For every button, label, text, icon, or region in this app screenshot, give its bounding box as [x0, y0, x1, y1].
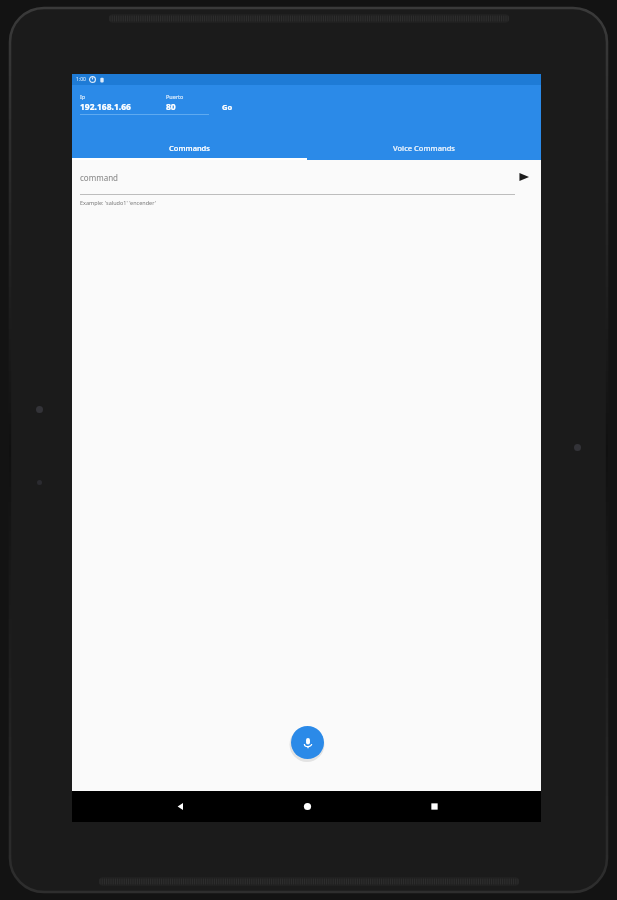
button[interactable]: Puerto — [166, 93, 214, 113]
button[interactable]: Voice Commands — [306, 135, 541, 160]
staticText: 1:00 — [76, 76, 86, 83]
staticText: command — [80, 172, 118, 183]
button[interactable]: Ip — [80, 93, 158, 113]
staticText: Voice Commands — [393, 143, 455, 153]
staticText: 192.168.1.66 — [80, 101, 131, 113]
button[interactable]: Commands — [72, 135, 306, 160]
staticText: Puerto — [166, 93, 184, 100]
staticText: Commands — [169, 143, 210, 153]
staticText: Go — [222, 102, 233, 112]
button[interactable]: Recent apps — [414, 791, 454, 822]
staticText: Ip — [80, 93, 86, 100]
button[interactable]: Voice input — [291, 726, 324, 759]
button[interactable]: Home — [287, 791, 327, 822]
button[interactable]: Back — [160, 791, 200, 822]
button[interactable]: Go — [217, 100, 238, 114]
button[interactable]: command — [80, 172, 513, 183]
staticText: 80 — [166, 101, 176, 113]
staticText: Example: 'saludo1' 'encender' — [80, 199, 156, 206]
button[interactable]: Send command — [513, 166, 535, 188]
